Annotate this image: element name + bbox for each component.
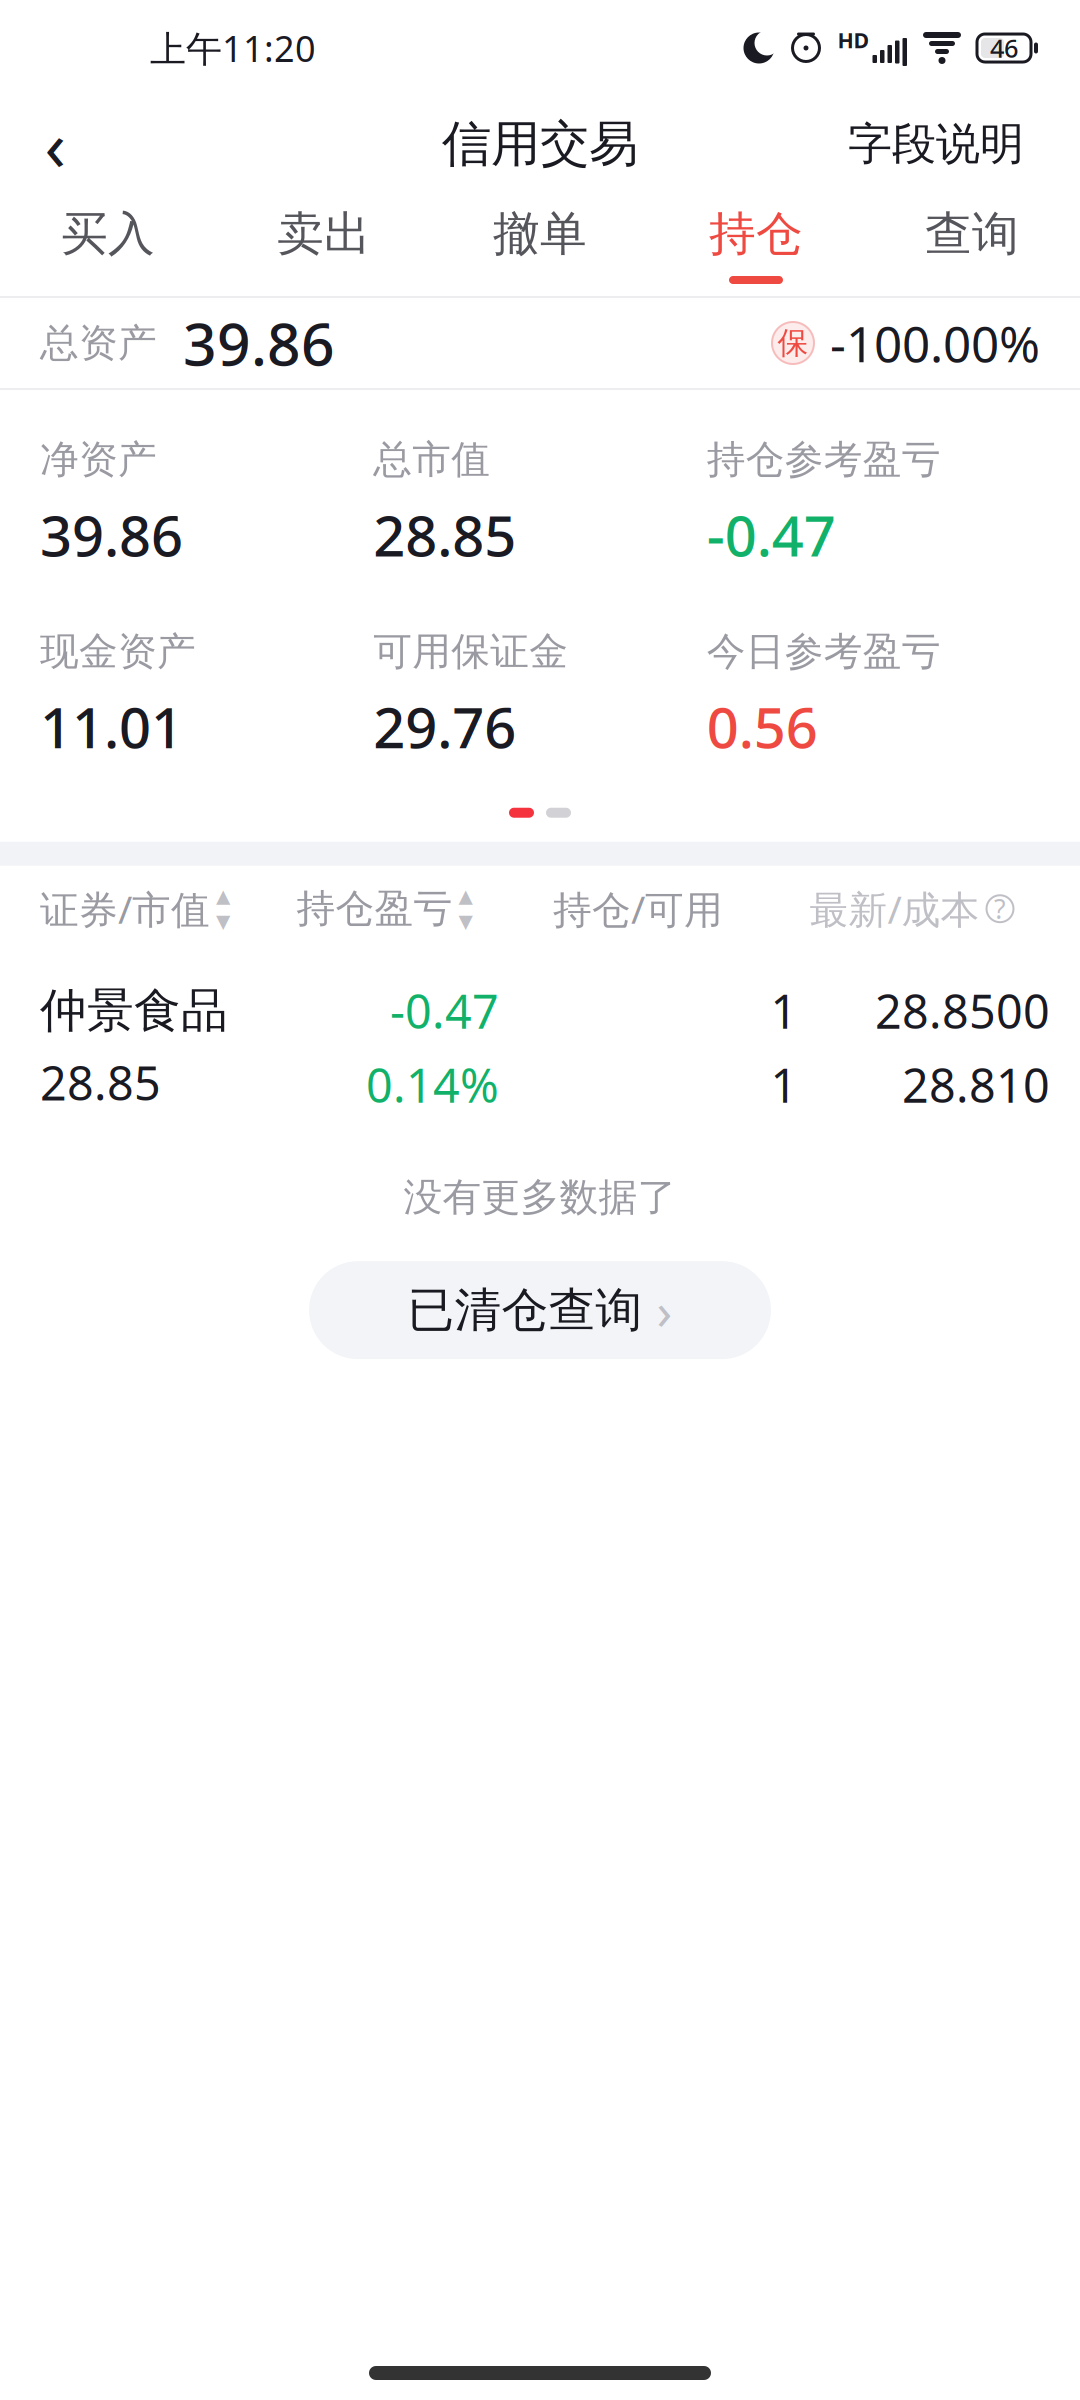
- staticText: 净资产: [40, 436, 157, 483]
- staticText: 总市值: [373, 436, 490, 483]
- staticText: 28.85: [373, 497, 516, 572]
- button[interactable]: 撤单: [432, 192, 648, 296]
- staticText: 卖出: [277, 205, 371, 263]
- staticText: HD: [837, 26, 869, 54]
- staticText: ▲: [458, 885, 472, 907]
- staticText: ›: [656, 1276, 672, 1344]
- staticText: ‹: [44, 98, 65, 190]
- staticText: 39.86: [183, 304, 335, 382]
- button[interactable]: 持仓盈亏: [296, 885, 553, 932]
- staticText: ▼: [458, 911, 472, 932]
- staticText: -100.00%: [830, 310, 1040, 376]
- staticText: 39.86: [40, 497, 183, 572]
- button[interactable]: 已清仓查询: [309, 1261, 771, 1359]
- button[interactable]: 卖出: [216, 192, 432, 296]
- staticText: 字段说明: [848, 117, 1024, 171]
- staticText: 28.810: [902, 1054, 1050, 1116]
- staticText: 上午11:20: [150, 24, 316, 72]
- staticText: 46: [990, 31, 1018, 65]
- staticText: -0.47: [390, 980, 499, 1042]
- staticText: 持仓盈亏: [296, 885, 452, 932]
- staticText: 0.56: [707, 689, 818, 764]
- staticText: ?: [994, 891, 1006, 926]
- staticText: 总资产: [40, 319, 157, 367]
- staticText: 买入: [61, 205, 155, 263]
- staticText: 持仓/可用: [553, 883, 723, 934]
- staticText: 仲景食品: [40, 982, 228, 1039]
- staticText: 现金资产: [40, 628, 196, 675]
- button[interactable]: 字段说明: [828, 96, 1044, 192]
- button[interactable]: 查询: [864, 192, 1080, 296]
- staticText: 1: [770, 1054, 797, 1116]
- staticText: 信用交易: [442, 114, 638, 174]
- staticText: 查询: [925, 205, 1019, 263]
- staticText: 28.85: [40, 1051, 161, 1113]
- button[interactable]: 证券/市值: [40, 883, 296, 934]
- button[interactable]: 买入: [0, 192, 216, 296]
- staticText: 29.76: [373, 689, 516, 764]
- staticText: 最新/成本: [809, 883, 979, 934]
- staticText: 持仓: [709, 205, 803, 263]
- staticText: 28.8500: [875, 980, 1050, 1042]
- button[interactable]: 返回: [0, 96, 110, 192]
- button[interactable]: 仲景食品: [0, 952, 1080, 1144]
- staticText: 今日参考盈亏: [707, 628, 941, 675]
- staticText: 持仓参考盈亏: [707, 436, 941, 483]
- staticText: 0.14%: [366, 1054, 499, 1116]
- staticText: 1: [770, 980, 797, 1042]
- staticText: 已清仓查询: [407, 1281, 642, 1339]
- staticText: 11.01: [40, 689, 183, 764]
- staticText: 保: [777, 324, 808, 362]
- staticText: ▼: [216, 911, 230, 932]
- button[interactable]: 持仓: [648, 192, 864, 296]
- staticText: -0.47: [707, 497, 836, 572]
- staticText: 可用保证金: [373, 628, 568, 675]
- staticText: 证券/市值: [40, 883, 210, 934]
- staticText: ▲: [216, 885, 230, 907]
- staticText: 没有更多数据了: [403, 1174, 676, 1221]
- staticText: 撤单: [493, 205, 587, 263]
